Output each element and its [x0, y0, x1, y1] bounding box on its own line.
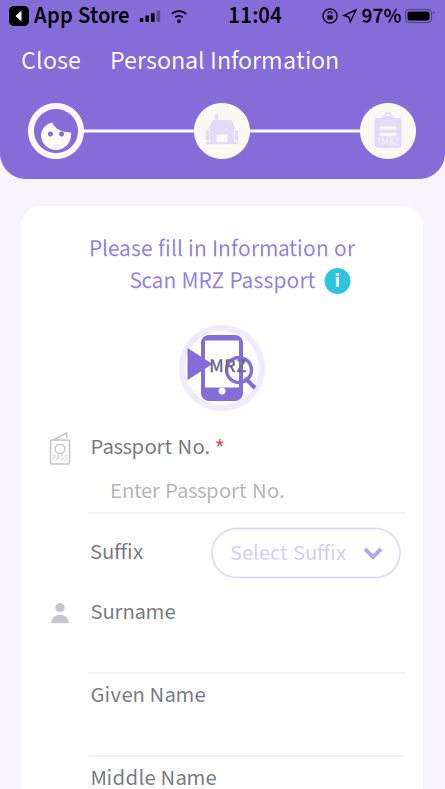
staticText: Middle Name: [90, 762, 216, 789]
button[interactable]: Review step: [360, 103, 416, 159]
button[interactable]: Address step: [194, 103, 250, 159]
staticText: TM&Z: [376, 135, 399, 149]
button[interactable]: Select Suffix: [212, 528, 400, 577]
staticText: Surname: [90, 596, 175, 628]
button[interactable]: Personal information step: [28, 103, 84, 159]
staticText: 97%: [361, 1, 401, 31]
button[interactable]: Scan MRZ passport: [178, 324, 266, 412]
staticText: Close: [21, 42, 81, 79]
staticText: App Store: [29, 0, 129, 32]
staticText: 11:04: [228, 0, 282, 32]
staticText: Suffix: [90, 536, 143, 568]
staticText: Given Name: [90, 679, 205, 711]
staticText: Passport No.: [90, 431, 210, 463]
button[interactable]: More information: [324, 268, 350, 294]
button[interactable]: Enter Passport No.: [110, 473, 430, 509]
staticText: i: [334, 266, 340, 295]
button[interactable]: Close: [4, 40, 98, 82]
staticText: Select Suffix: [230, 537, 346, 569]
staticText: Scan MRZ Passport: [129, 264, 315, 298]
staticText: Enter Passport No.: [110, 475, 285, 507]
staticText: *: [214, 431, 225, 467]
staticText: MRZ: [209, 352, 247, 380]
staticText: Personal Information: [110, 42, 339, 79]
staticText: PASS: [52, 452, 68, 463]
staticText: Please fill in Information or: [89, 232, 355, 266]
